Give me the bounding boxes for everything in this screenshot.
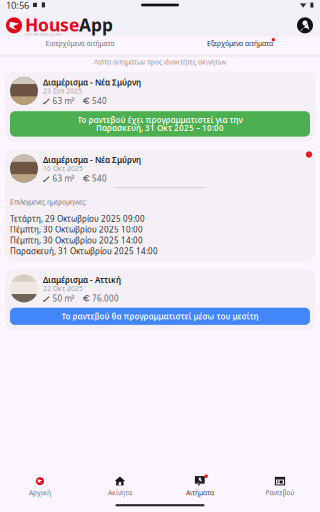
- staticText: Εξερχόμενα αιτήματα: [207, 39, 273, 48]
- staticText: Αιτήματα: [186, 488, 214, 497]
- staticText: Ακίνητα: [108, 488, 132, 497]
- staticText: Ραντεβού: [265, 488, 294, 497]
- button[interactable]: Ραντεβού: [240, 476, 320, 496]
- staticText: Το ραντεβού έχει προγραμματιστεί για την: [77, 114, 242, 125]
- staticText: 50 m²: [52, 293, 74, 304]
- staticText: Αρχική: [29, 488, 51, 497]
- staticText: Εισερχόμενα αιτήματα: [45, 39, 114, 48]
- button[interactable]: Account: [297, 17, 313, 33]
- staticText: Διαμέρισμα - Νέα Σμύρνη: [43, 77, 141, 88]
- button[interactable]: Το ραντεβού θα προγραμματιστεί μέσω του …: [10, 308, 310, 325]
- staticText: 23 Σεπ 2025: [43, 86, 82, 95]
- staticText: 63 m²: [52, 95, 74, 106]
- staticText: Λίστα αιτημάτων προς ιδιοκτήτες ακινήτων: [94, 58, 226, 66]
- button[interactable]: Ακίνητα: [80, 476, 160, 496]
- staticText: 63 m²: [52, 173, 74, 184]
- staticText: Τετάρτη, 29 Οκτωβρίου 2025 09:00: [10, 213, 145, 224]
- button[interactable]: Αρχική: [0, 476, 80, 496]
- staticText: Διαμέρισμα - Νέα Σμύρνη: [43, 155, 141, 165]
- staticText: 22 Οκτ 2025: [43, 284, 83, 293]
- staticText: Το ραντεβού θα προγραμματιστεί μέσω του …: [61, 311, 258, 322]
- staticText: Επιλεγμένες ημερομηνίες:: [10, 198, 87, 206]
- button[interactable]: Το ραντεβού έχει προγραμματιστεί για την: [10, 111, 310, 137]
- staticText: Παρασκευή, 31 Οκτ 2025 – 10:00: [96, 123, 224, 133]
- staticText: Διαμέρισμα - Αττική: [43, 275, 121, 285]
- staticText: Πέμπτη, 30 Οκτωβρίου 2025 10:00: [10, 224, 143, 235]
- button[interactable]: Εξερχόμενα αιτήματα: [160, 37, 320, 50]
- staticText: 10:56: [6, 0, 29, 11]
- button[interactable]: Αιτήματα: [160, 476, 240, 496]
- staticText: 540: [92, 173, 107, 184]
- staticText: House: [25, 13, 79, 36]
- staticText: 540: [92, 95, 107, 106]
- staticText: Πέμπτη, 30 Οκτωβρίου 2025 14:00: [10, 235, 143, 246]
- staticText: Παρασκευή, 31 Οκτωβρίου 2025 14:00: [10, 246, 158, 256]
- staticText: 76.000: [92, 293, 119, 304]
- staticText: 16 Οκτ 2025: [43, 164, 83, 173]
- staticText: BY ONE REAL ESTATE: [25, 31, 62, 37]
- button[interactable]: Εισερχόμενα αιτήματα: [0, 37, 160, 50]
- staticText: App: [79, 13, 113, 36]
